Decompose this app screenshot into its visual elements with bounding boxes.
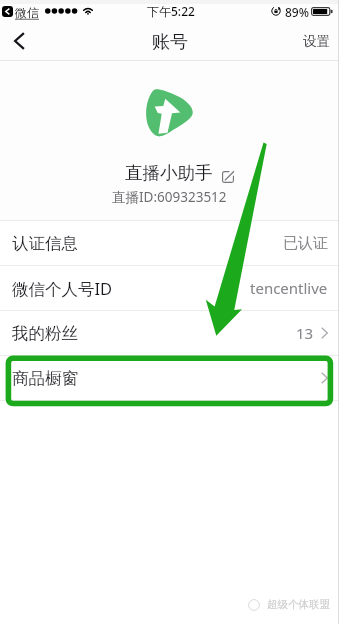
staticText: 13 xyxy=(296,323,314,343)
staticText: tencentlive xyxy=(250,278,328,298)
staticText: 商品橱窗 xyxy=(12,368,78,389)
button[interactable]: 设置 xyxy=(294,22,339,60)
staticText: 我的粉丝 xyxy=(12,323,78,344)
button[interactable]: 编辑昵称 xyxy=(219,168,236,185)
button[interactable]: 返回微信 xyxy=(2,6,13,17)
button[interactable]: 我的粉丝 xyxy=(0,311,339,355)
button[interactable]: 认证信息 xyxy=(0,221,339,265)
staticText: 微信个人号ID xyxy=(12,277,113,300)
staticText: 直播小助手 xyxy=(125,162,213,184)
staticText: 账号 xyxy=(152,31,188,54)
button[interactable]: 商品橱窗 xyxy=(0,356,339,400)
staticText: 设置 xyxy=(303,33,330,50)
staticText: 已认证 xyxy=(283,234,328,253)
staticText: 下午5:22 xyxy=(147,3,195,19)
staticText: 认证信息 xyxy=(12,233,78,254)
staticText: 微信 xyxy=(15,5,39,20)
staticText: 89% xyxy=(285,4,309,20)
staticText: 直播ID:609323512 xyxy=(112,188,227,206)
staticText: 超级个体联盟 xyxy=(267,598,330,611)
button[interactable]: 微信个人号ID xyxy=(0,266,339,310)
button[interactable]: 返回 xyxy=(0,22,38,60)
